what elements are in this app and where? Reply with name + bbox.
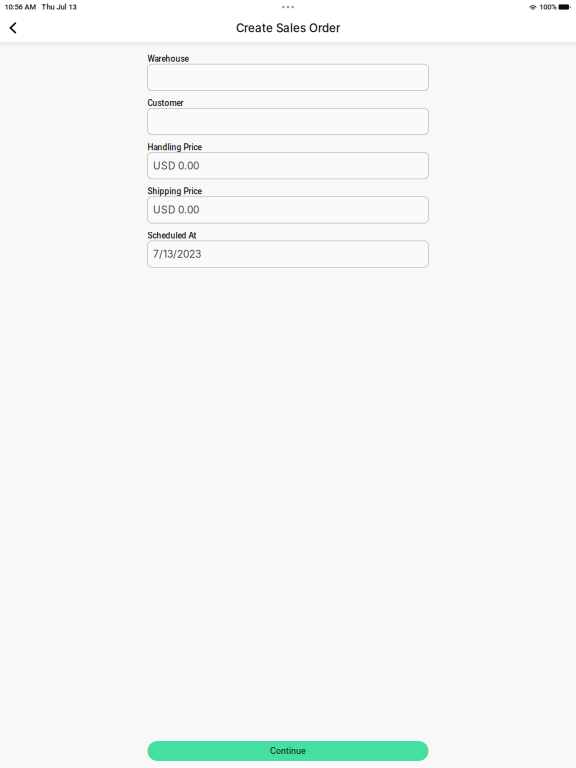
staticText: Handling Price	[147, 142, 201, 152]
button[interactable]: USD 0.00	[147, 197, 428, 223]
staticText: Scheduled At	[147, 231, 196, 241]
button[interactable]: 7/13/2023	[147, 241, 428, 267]
staticText: Thu Jul 13	[41, 3, 76, 11]
staticText: Shipping Price	[147, 187, 201, 196]
staticText: Customer	[147, 98, 183, 108]
staticText: 10:56 AM	[4, 3, 36, 11]
staticText: 7/13/2023	[153, 248, 201, 260]
button[interactable]	[147, 108, 428, 135]
button[interactable]: Back	[0, 17, 25, 39]
staticText: Continue	[270, 746, 306, 756]
button[interactable]	[147, 64, 428, 90]
staticText: USD 0.00	[153, 204, 199, 216]
button[interactable]: USD 0.00	[147, 152, 428, 179]
staticText: USD 0.00	[153, 160, 199, 172]
button[interactable]: Continue	[147, 741, 428, 761]
staticText: 100%	[539, 3, 556, 11]
staticText: Warehouse	[147, 54, 188, 64]
staticText: Create Sales Order	[236, 21, 340, 35]
